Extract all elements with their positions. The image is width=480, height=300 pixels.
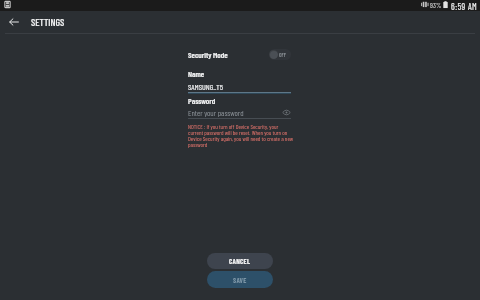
staticText: NOTICE : If you turn off Device Security… [188,123,294,148]
button[interactable]: Security Mode [188,49,291,60]
button[interactable]: CANCEL [207,253,273,269]
staticText: Enter your password [188,108,244,117]
staticText: SAMSUNG_T5 [188,82,224,92]
staticText: OFF [279,51,287,58]
staticText: Name [188,69,205,79]
button[interactable]: Security Mode toggle [269,49,291,60]
staticText: Password [188,96,216,106]
staticText: SETTINGS [31,16,65,28]
staticText: 6:59 AM [451,1,478,12]
button[interactable]: Back [4,12,23,31]
staticText: 93% [430,1,442,9]
staticText: CANCEL [229,257,251,265]
staticText: SAVE [233,276,247,284]
other: Show password [282,108,291,117]
staticText: Security Mode [188,50,228,60]
button[interactable]: SAVE [207,271,273,288]
